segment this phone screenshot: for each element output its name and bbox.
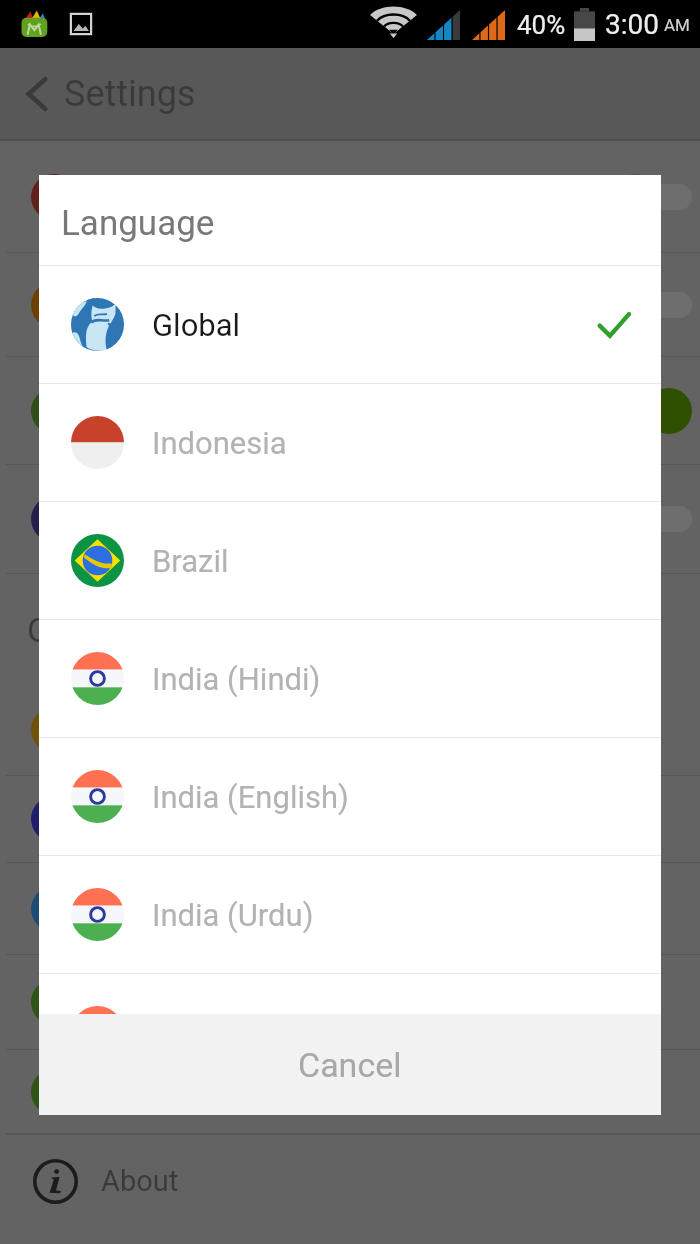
- button[interactable]: Back: [0, 48, 700, 139]
- button[interactable]: Global: [39, 266, 661, 384]
- staticText: Auto Lock: [101, 288, 231, 322]
- other: Screenshot: [70, 13, 92, 35]
- staticText: General: [27, 610, 143, 650]
- other: App notification: [20, 10, 50, 38]
- button[interactable]: Brazil: [39, 502, 661, 620]
- staticText: Brazil: [152, 543, 229, 579]
- button[interactable]: Export: [0, 1050, 700, 1134]
- staticText: 3:00: [605, 8, 659, 41]
- staticText: Security Question: [101, 502, 328, 536]
- staticText: Language: [101, 713, 229, 747]
- staticText: India (Hindi): [152, 661, 321, 697]
- button[interactable]: India (Tamil): [39, 974, 661, 1014]
- staticText: Indonesia: [152, 425, 287, 461]
- staticText: Backup: [101, 892, 197, 926]
- staticText: 40%: [517, 10, 566, 40]
- button[interactable]: Password Strength: [0, 141, 700, 253]
- button[interactable]: India (English): [39, 738, 661, 856]
- button[interactable]: Backup: [0, 863, 700, 955]
- staticText: India (English): [152, 779, 349, 815]
- staticText: AM: [664, 15, 690, 35]
- button[interactable]: India (Hindi): [39, 620, 661, 738]
- staticText: Theme: [101, 802, 191, 836]
- button[interactable]: Fingerprint: [0, 357, 700, 465]
- other: Back: [26, 77, 48, 111]
- staticText: Cancel: [298, 1045, 402, 1085]
- button[interactable]: Import: [0, 955, 700, 1050]
- button[interactable]: India (Urdu): [39, 856, 661, 974]
- button[interactable]: Cancel: [39, 1014, 661, 1115]
- staticText: Language: [61, 203, 215, 244]
- staticText: Import: [101, 985, 188, 1019]
- staticText: Fingerprint: [101, 394, 241, 428]
- staticText: India (Urdu): [152, 897, 314, 933]
- button[interactable]: Security Question: [0, 465, 700, 574]
- staticText: About: [101, 1164, 179, 1198]
- staticText: Global: [152, 307, 241, 343]
- button[interactable]: About: [0, 1134, 700, 1227]
- button[interactable]: Auto Lock: [0, 253, 700, 357]
- button[interactable]: Language: [0, 685, 700, 776]
- staticText: Settings: [64, 73, 196, 115]
- button[interactable]: Theme: [0, 776, 700, 863]
- button[interactable]: Indonesia: [39, 384, 661, 502]
